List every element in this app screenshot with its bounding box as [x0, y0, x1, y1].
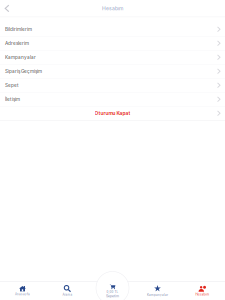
button[interactable]: Sepet — [0, 78, 225, 92]
staticText: İletişim — [5, 96, 20, 102]
staticText: Oturumu Kapat — [94, 110, 130, 116]
button[interactable]: Anasayfa — [0, 282, 45, 300]
button[interactable]: Arama — [45, 282, 90, 300]
staticText: Arama — [62, 293, 72, 296]
button[interactable]: Oturumu Kapat — [0, 106, 225, 120]
button[interactable]: Kampanyalar — [0, 50, 225, 64]
button[interactable]: İletişim — [0, 92, 225, 106]
button[interactable]: Sipariş Geçmişim — [0, 64, 225, 78]
staticText: Sepetim — [106, 294, 119, 298]
staticText: Adreslerim — [5, 40, 29, 46]
staticText: 0,00 TL — [106, 290, 118, 294]
button[interactable]: Adreslerim — [0, 36, 225, 50]
staticText: Kampanyalar — [147, 293, 168, 297]
button[interactable]: 0,00 TL — [96, 271, 129, 300]
staticText: Sepet — [5, 82, 19, 88]
button[interactable]: Kampanyalar — [135, 282, 180, 300]
staticText: Hesabım — [195, 293, 209, 296]
staticText: Hesabım — [102, 5, 123, 11]
staticText: Bildirimlerim — [5, 26, 32, 32]
button[interactable]: Hesabım — [180, 282, 225, 300]
staticText: Kampanyalar — [5, 54, 36, 60]
staticText: Anasayfa — [15, 292, 30, 296]
button[interactable]: Bildirimlerim — [0, 22, 225, 36]
button[interactable]: Back — [0, 0, 14, 16]
staticText: Sipariş Geçmişim — [5, 68, 42, 74]
